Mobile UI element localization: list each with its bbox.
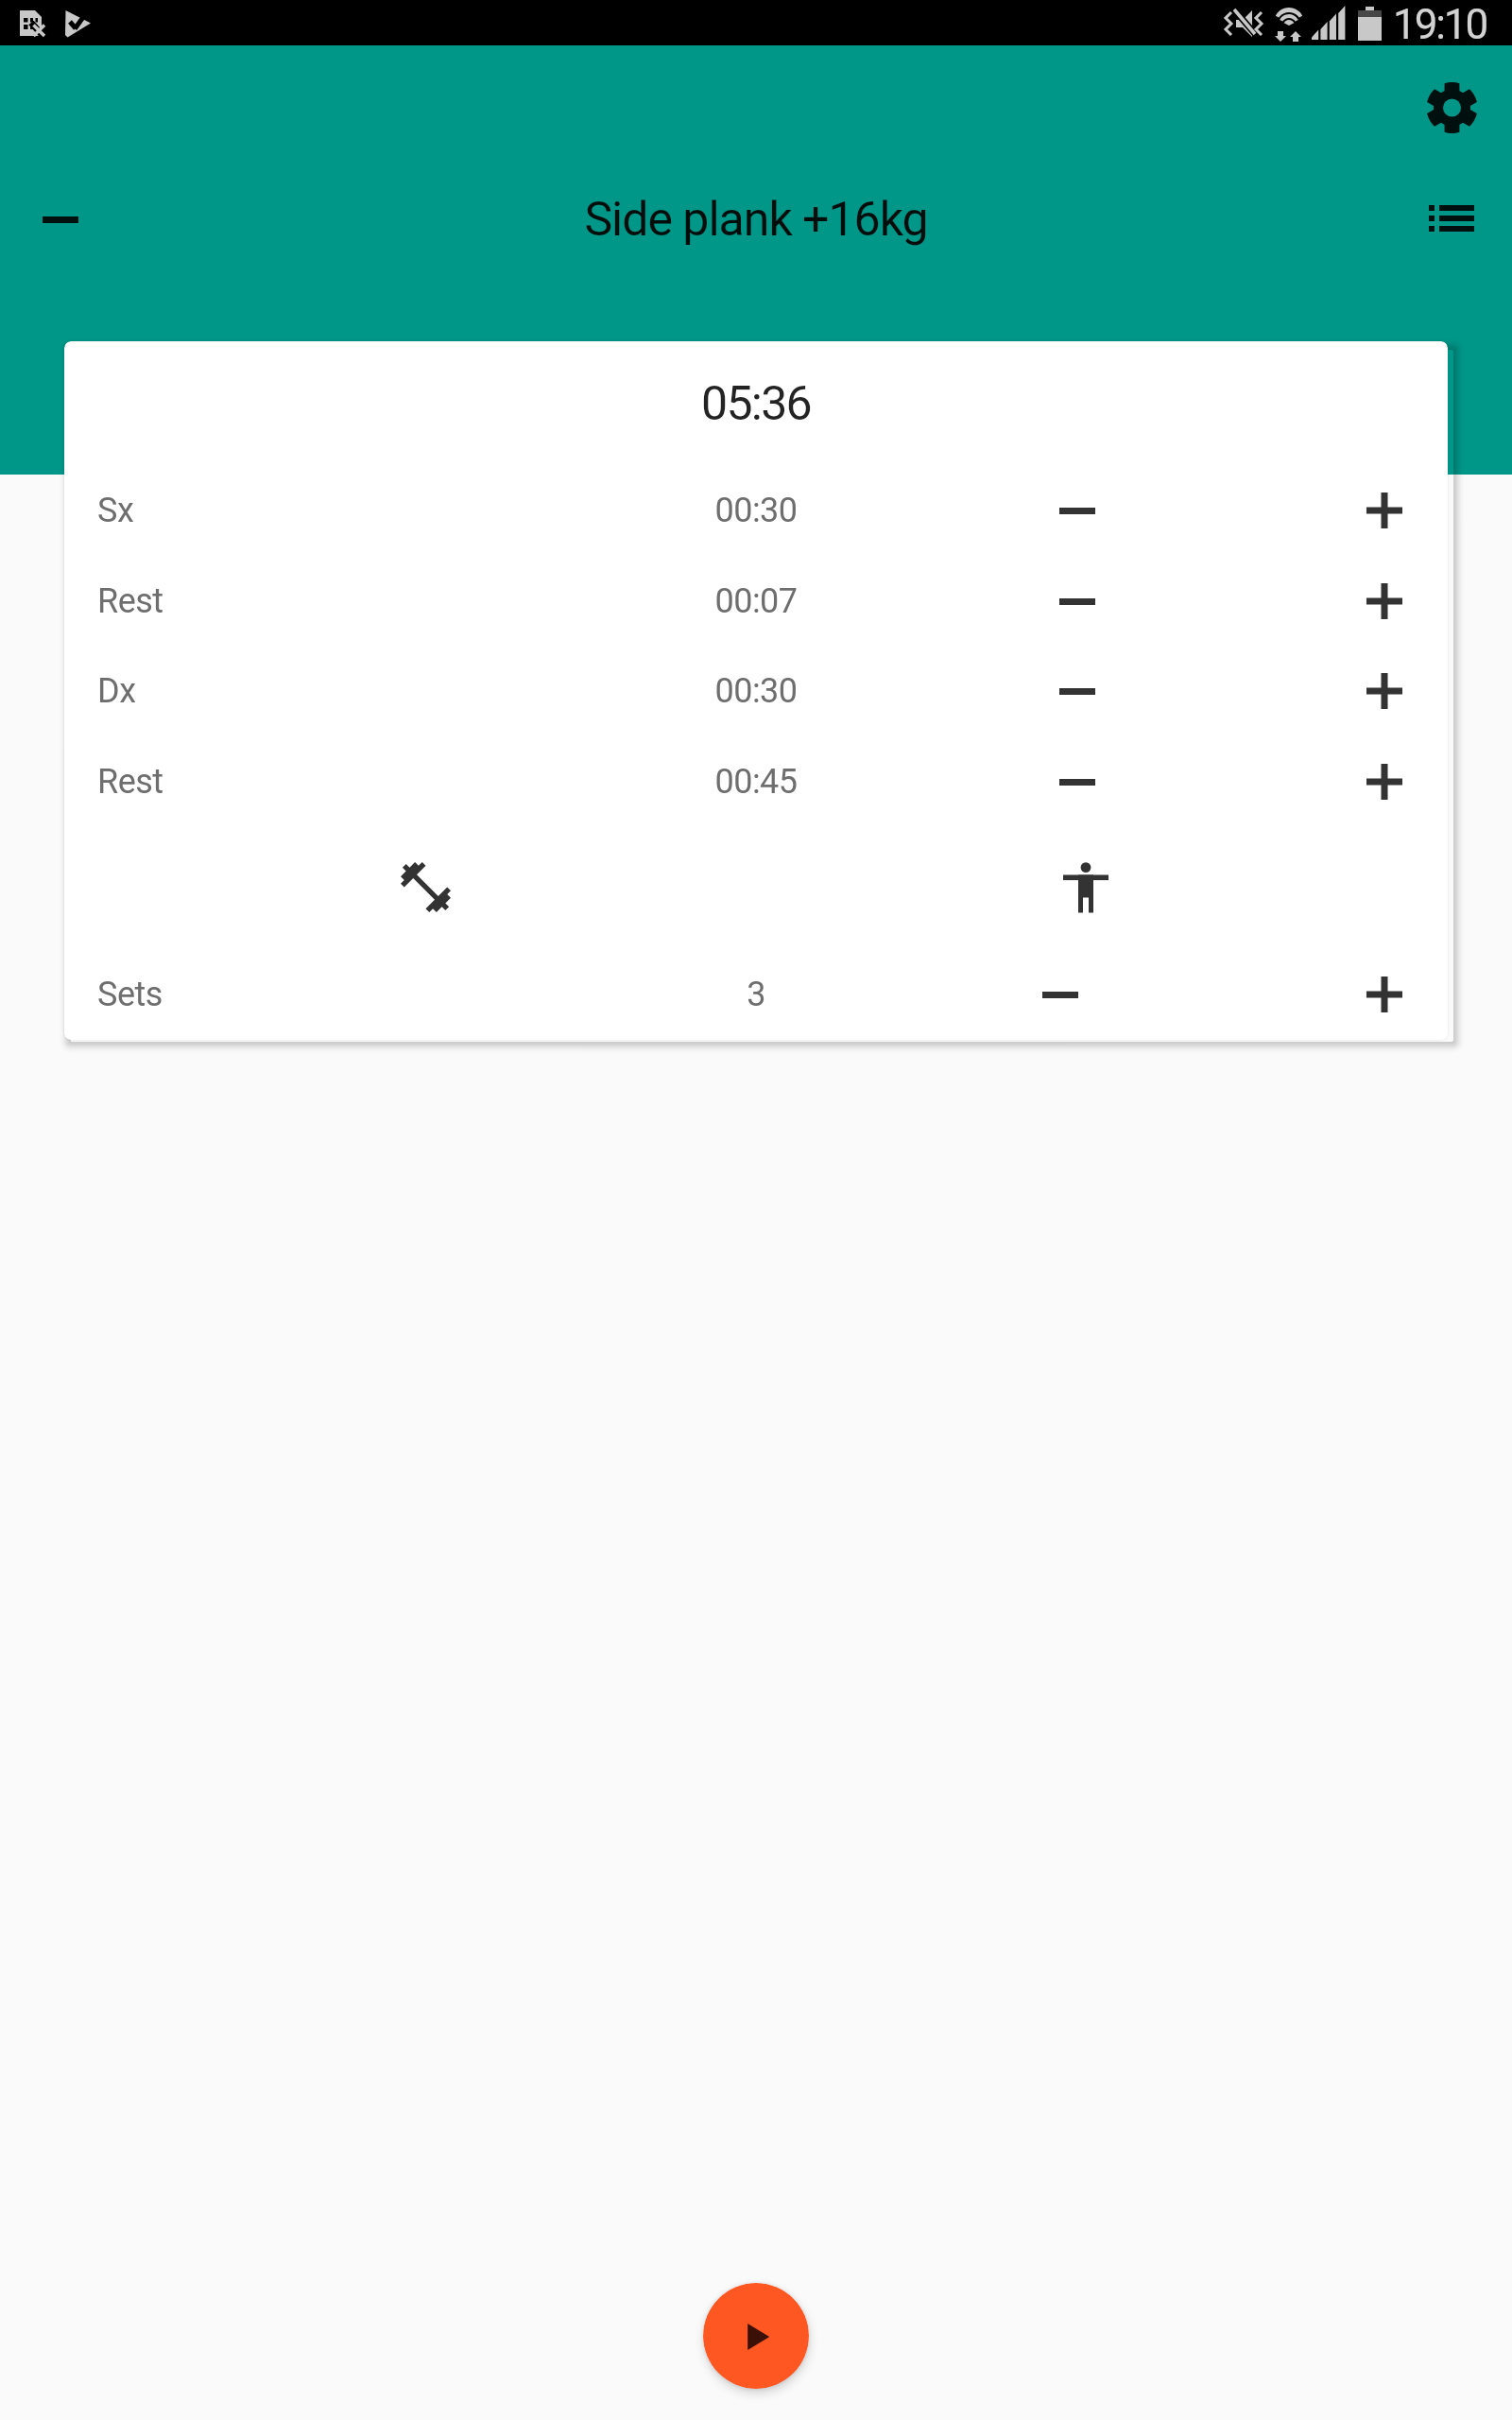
button[interactable]: Increase Rest	[1332, 730, 1436, 834]
staticText: 00:07	[64, 581, 1448, 621]
button[interactable]: Decrease Rest	[1025, 549, 1129, 653]
button[interactable]: Decrease Dx	[1025, 639, 1129, 743]
staticText: Sx	[97, 491, 134, 530]
button[interactable]: Start timer	[703, 2283, 809, 2389]
staticText: Sets	[97, 975, 163, 1014]
staticText: Rest	[97, 581, 163, 621]
staticText: 3	[64, 975, 1448, 1014]
button[interactable]: Increase Sx	[1332, 458, 1436, 562]
button[interactable]: Increase Rest	[1332, 549, 1436, 653]
button[interactable]: Collapse	[4, 163, 117, 276]
staticText: 05:36	[64, 376, 1448, 432]
button[interactable]: Decrease Sx	[1025, 458, 1129, 562]
button[interactable]: Settings	[1395, 51, 1508, 164]
staticText: 00:30	[64, 671, 1448, 711]
button[interactable]: Exercise list	[1395, 162, 1508, 275]
button[interactable]: Added weight	[369, 830, 482, 943]
button[interactable]: Decrease sets	[1008, 942, 1112, 1040]
staticText: 00:45	[64, 762, 1448, 802]
button[interactable]: Decrease Rest	[1025, 730, 1129, 834]
button[interactable]: Increase sets	[1332, 942, 1436, 1040]
button[interactable]: Body weight	[1029, 831, 1143, 944]
staticText: Side plank +16kg	[0, 192, 1512, 248]
staticText: 00:30	[64, 491, 1448, 530]
button[interactable]: Increase Dx	[1332, 639, 1436, 743]
staticText: 19:10	[1393, 0, 1487, 45]
staticText: Rest	[97, 762, 163, 802]
staticText: Dx	[97, 671, 136, 711]
